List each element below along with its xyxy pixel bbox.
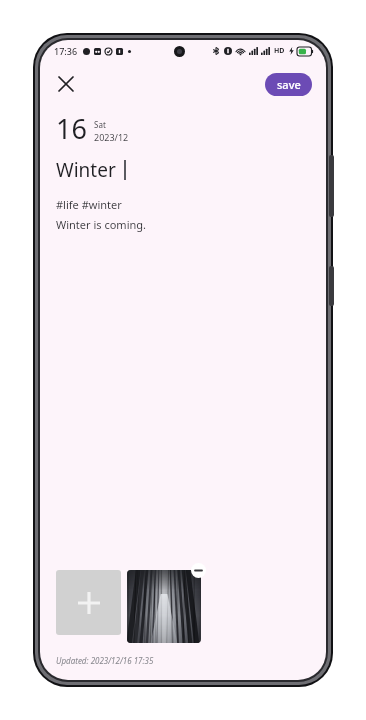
button[interactable]: Add photo	[56, 570, 121, 635]
staticText: HD	[274, 46, 285, 56]
button[interactable]: Photo	[127, 570, 201, 643]
staticText: 16	[56, 110, 87, 147]
staticText: Sat	[94, 119, 106, 130]
staticText: Winter is coming.	[56, 217, 146, 232]
staticText: Updated: 2023/12/16 17:35	[56, 655, 154, 666]
button[interactable]: save	[265, 73, 312, 96]
staticText: save	[277, 77, 301, 92]
button[interactable]: Close	[48, 66, 84, 102]
staticText: Winter	[56, 157, 116, 183]
staticText: 17:36	[54, 45, 78, 57]
staticText: #life #winter	[56, 197, 122, 212]
staticText: 2023/12	[94, 131, 129, 143]
button[interactable]: Remove photo	[191, 563, 206, 578]
